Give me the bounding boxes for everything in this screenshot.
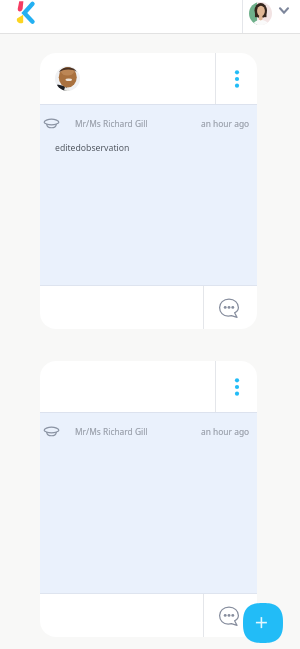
button[interactable]: More options (216, 53, 257, 104)
button[interactable]: Account (243, 0, 300, 34)
button[interactable]: Comments (204, 594, 257, 637)
staticText: an hour ago (201, 118, 250, 129)
button[interactable]: Home (8, 0, 42, 34)
staticText: an hour ago (201, 426, 250, 437)
staticText: Mr/Ms Richard Gill (75, 118, 148, 129)
button[interactable]: More options (216, 361, 257, 412)
staticText: Mr/Ms Richard Gill (75, 426, 148, 437)
button[interactable]: Add (243, 603, 283, 643)
button[interactable]: Comments (204, 286, 257, 329)
staticText: editedobservation (55, 142, 130, 154)
